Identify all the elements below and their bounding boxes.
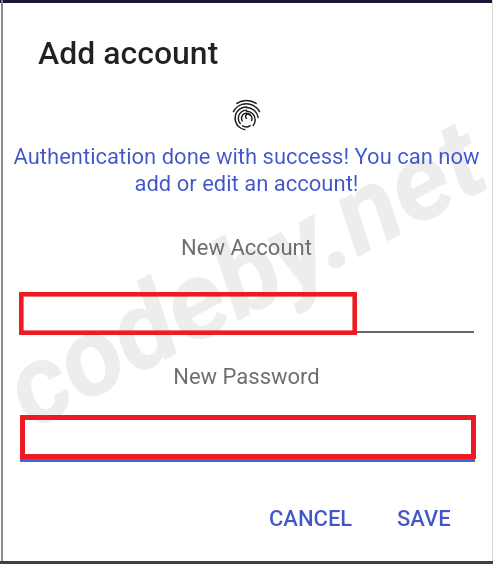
button[interactable]: SAVE bbox=[381, 497, 467, 541]
staticText: Add account bbox=[38, 34, 219, 72]
staticText: SAVE bbox=[397, 506, 451, 532]
staticText: codeby.net bbox=[0, 94, 493, 454]
button[interactable]: CANCEL bbox=[253, 497, 369, 541]
staticText: Authentication done with success! You ca… bbox=[8, 144, 485, 197]
staticText: New Account bbox=[0, 235, 493, 261]
staticText: CANCEL bbox=[269, 506, 353, 532]
staticText: New Password bbox=[0, 364, 493, 390]
other: Fingerprint bbox=[232, 100, 261, 133]
